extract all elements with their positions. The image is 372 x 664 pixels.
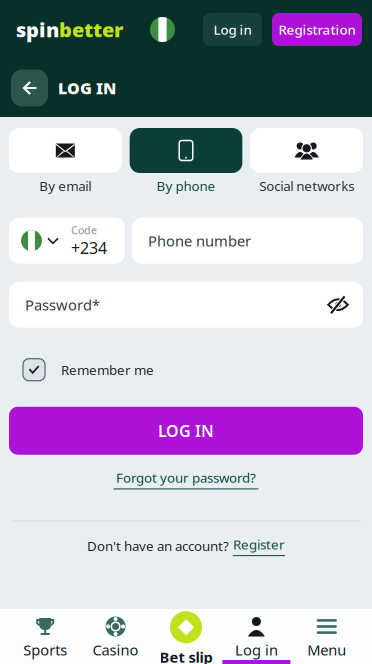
staticText: Log in bbox=[235, 640, 278, 659]
button[interactable]: Register bbox=[233, 532, 285, 559]
staticText: Casino bbox=[93, 640, 139, 659]
staticText: Phone number bbox=[148, 231, 251, 250]
staticText: +234 bbox=[71, 237, 107, 258]
button[interactable]: Registration bbox=[272, 13, 362, 46]
staticText: Social networks bbox=[259, 177, 354, 195]
staticText: Code bbox=[71, 223, 97, 237]
button[interactable]: Code bbox=[9, 218, 125, 264]
staticText: Remember me bbox=[61, 361, 154, 379]
button[interactable]: Bet slip bbox=[151, 609, 221, 664]
button[interactable]: Remember me bbox=[0, 328, 372, 400]
staticText: Register bbox=[233, 535, 285, 553]
button[interactable]: By phone bbox=[130, 128, 242, 195]
button[interactable]: Sports bbox=[10, 609, 80, 664]
staticText: Registration bbox=[278, 21, 355, 38]
staticText: Bet slip bbox=[159, 647, 212, 664]
button[interactable]: Log in bbox=[203, 13, 262, 46]
staticText: LOG IN bbox=[158, 420, 214, 441]
button[interactable]: Menu bbox=[292, 609, 362, 664]
button[interactable]: By email bbox=[9, 128, 122, 195]
button[interactable]: Casino bbox=[80, 609, 151, 664]
button[interactable]: LOG IN bbox=[9, 407, 363, 455]
staticText: Log in bbox=[213, 21, 251, 38]
button[interactable]: Forgot your password? bbox=[99, 464, 272, 494]
staticText: Password* bbox=[25, 295, 100, 314]
staticText: spin bbox=[16, 16, 59, 43]
staticText: LOG IN bbox=[58, 77, 116, 99]
button[interactable]: Back bbox=[11, 69, 48, 106]
button[interactable]: Show password bbox=[327, 296, 349, 314]
staticText: By phone bbox=[156, 177, 215, 195]
staticText: Forgot your password? bbox=[116, 469, 256, 486]
staticText: better bbox=[59, 16, 123, 43]
button[interactable]: Log in bbox=[221, 609, 292, 664]
staticText: Sports bbox=[23, 640, 67, 659]
staticText: By email bbox=[39, 177, 91, 195]
staticText: Don't have an account? bbox=[87, 537, 229, 555]
staticText: Menu bbox=[307, 640, 346, 659]
button[interactable]: Social networks bbox=[250, 128, 363, 195]
